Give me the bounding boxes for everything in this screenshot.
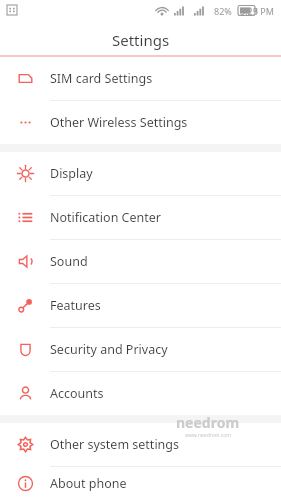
staticText: Display <box>50 165 93 182</box>
other: Security and privacy <box>17 341 34 358</box>
staticText: Other Wireless Settings <box>50 114 188 131</box>
staticText: 82% <box>214 5 232 17</box>
other: Features <box>17 297 34 314</box>
staticText: Notification Center <box>50 209 162 226</box>
button[interactable]: Sound <box>0 240 281 283</box>
button[interactable]: Features <box>0 284 281 327</box>
button[interactable]: Other wireless settings <box>0 101 281 144</box>
staticText: Features <box>50 297 101 314</box>
staticText: Other system settings <box>50 436 180 453</box>
button[interactable]: Other system settings <box>0 423 281 466</box>
staticText: Sound <box>50 253 88 270</box>
other: Sound <box>17 253 34 270</box>
other: Accounts <box>17 385 34 402</box>
staticText: www.needrom.com <box>185 432 231 439</box>
other: Other system settings <box>17 436 34 453</box>
button[interactable]: Security and privacy <box>0 328 281 371</box>
staticText: 5:25 PM <box>240 5 274 17</box>
staticText: Settings <box>112 30 170 50</box>
staticText: About phone <box>50 475 127 492</box>
button[interactable]: About phone <box>0 467 281 500</box>
other: About phone <box>17 475 34 492</box>
other: Notification center <box>17 209 34 226</box>
staticText: needrom <box>176 413 240 432</box>
other: Other wireless settings <box>17 114 34 131</box>
button[interactable]: SIM card <box>0 57 281 100</box>
staticText: Accounts <box>50 385 104 402</box>
other: SIM card <box>17 70 34 87</box>
button[interactable]: Notification center <box>0 196 281 239</box>
button[interactable]: Display <box>0 152 281 195</box>
staticText: Security and Privacy <box>50 341 168 358</box>
staticText: SIM card Settings <box>50 70 153 87</box>
other: Display <box>17 165 34 182</box>
button[interactable]: Accounts <box>0 372 281 415</box>
